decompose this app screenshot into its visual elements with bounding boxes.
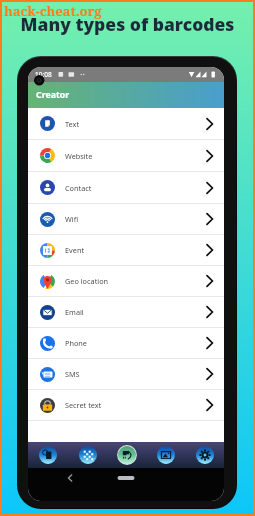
button[interactable]: Event [28,235,224,266]
button[interactable]: Geo location [28,266,224,297]
other: Gallery [156,445,176,465]
button[interactable]: Email [28,297,224,328]
staticText: Many types of barcodes [0,12,255,36]
button[interactable]: Secret text [28,390,224,421]
other: Scan [117,445,137,465]
button[interactable]: Wifi [28,204,224,235]
button[interactable]: History [28,442,68,468]
button[interactable]: Contact [28,172,224,204]
staticText: Contact [65,183,92,193]
staticText: Email [65,307,84,317]
button[interactable]: Website [28,140,224,172]
staticText: Wifi [65,214,79,224]
button[interactable]: Gallery [146,442,185,468]
other: History [38,445,58,465]
button[interactable]: SMS [28,359,224,390]
other: Settings [195,445,215,465]
staticText: hack-cheat.org [4,2,102,20]
button[interactable]: My codes [68,442,107,468]
staticText: SMS [65,369,80,379]
button[interactable]: Settings [185,442,224,468]
staticText: Secret text [65,400,102,410]
other: My codes [78,445,98,465]
button[interactable]: Text [28,108,224,140]
staticText: Text [65,119,80,129]
staticText: Geo location [65,276,109,286]
staticText: 10:08 [35,70,52,79]
button[interactable]: Scan [107,442,146,468]
staticText: Event [65,245,85,255]
staticText: Phone [65,338,87,348]
staticText: Creator [36,89,70,101]
staticText: Website [65,151,93,161]
button[interactable]: Phone [28,328,224,359]
